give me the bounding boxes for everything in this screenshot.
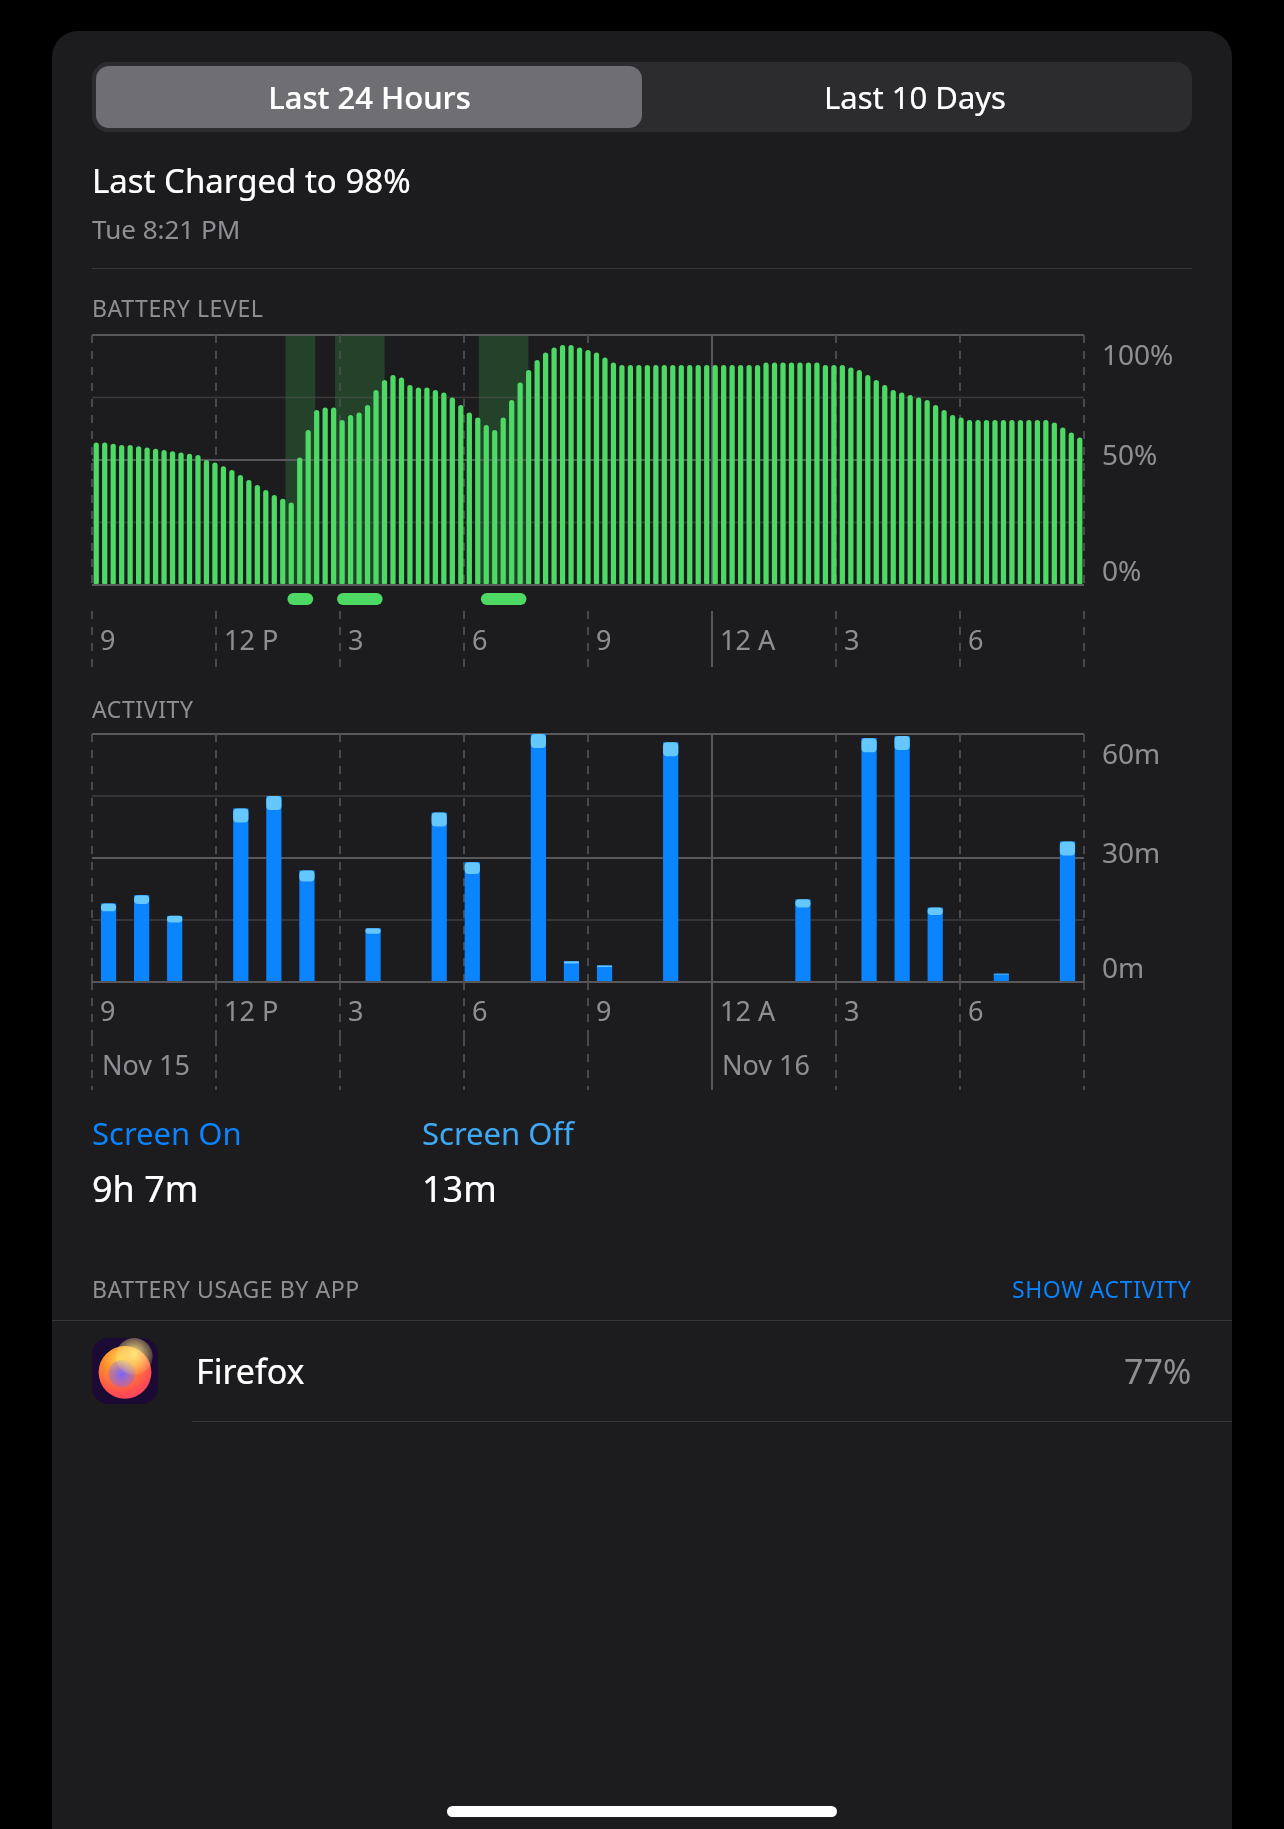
staticText: 0%	[1102, 551, 1142, 589]
staticText: Screen Off	[422, 1112, 574, 1154]
staticText: 100%	[1102, 335, 1174, 373]
staticText: BATTERY USAGE BY APP	[92, 1273, 1012, 1304]
staticText: 3	[348, 992, 364, 1029]
staticText: 9	[596, 992, 612, 1029]
staticText: 12 P	[224, 992, 279, 1029]
staticText: 13m	[422, 1164, 497, 1213]
staticText: Last Charged to 98%	[92, 158, 411, 203]
staticText: 60m	[1102, 734, 1161, 772]
staticText: 3	[348, 621, 364, 658]
staticText: Nov 15	[102, 1046, 190, 1083]
staticText: 12 A	[720, 992, 776, 1029]
staticText: 6	[472, 992, 488, 1029]
staticText: BATTERY LEVEL	[92, 292, 264, 323]
button[interactable]: Last 10 Days	[642, 66, 1188, 128]
staticText: 30m	[1102, 833, 1161, 871]
staticText: 0m	[1102, 948, 1145, 986]
staticText: 6	[472, 621, 488, 658]
staticText: ACTIVITY	[92, 693, 194, 724]
staticText: 50%	[1102, 435, 1158, 473]
staticText: 12 P	[224, 621, 279, 658]
staticText: 6	[968, 621, 984, 658]
staticText: SHOW ACTIVITY	[1012, 1273, 1192, 1304]
button[interactable]: Firefox	[52, 1321, 1232, 1421]
staticText: 12 A	[720, 621, 776, 658]
staticText: Nov 16	[722, 1046, 810, 1083]
staticText: 6	[968, 992, 984, 1029]
staticText: Screen On	[92, 1112, 242, 1154]
button[interactable]: Last 24 Hours	[96, 66, 642, 128]
staticText: 3	[844, 621, 860, 658]
button[interactable]: SHOW ACTIVITY	[1012, 1273, 1192, 1304]
staticText: Last 24 Hours	[268, 76, 471, 118]
staticText: 3	[844, 992, 860, 1029]
staticText: Firefox	[196, 1348, 1124, 1394]
staticText: 9	[100, 621, 116, 658]
staticText: 9	[100, 992, 116, 1029]
staticText: 77%	[1124, 1348, 1192, 1394]
staticText: Last 10 Days	[824, 76, 1006, 118]
staticText: 9	[596, 621, 612, 658]
staticText: Tue 8:21 PM	[92, 211, 241, 246]
staticText: 9h 7m	[92, 1164, 199, 1213]
